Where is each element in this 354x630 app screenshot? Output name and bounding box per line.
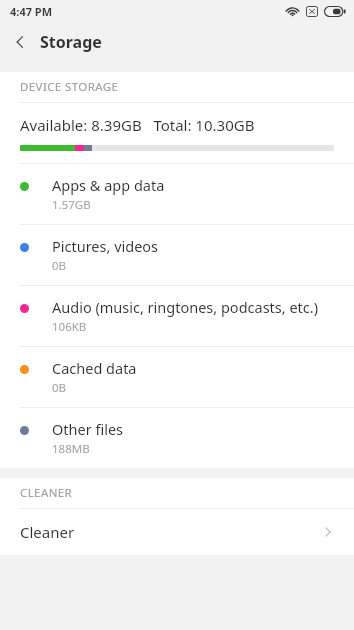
staticText: CLEANER	[20, 485, 73, 501]
button[interactable]: Other files	[0, 408, 354, 468]
button[interactable]: Audio (music, ringtones, podcasts, etc.)	[0, 286, 354, 346]
staticText: 0B	[52, 380, 67, 396]
staticText: 0B	[52, 258, 67, 274]
staticText: Cached data	[52, 358, 137, 378]
staticText: Pictures, videos	[52, 236, 159, 256]
staticText: Other files	[52, 419, 124, 439]
button[interactable]: Pictures, videos	[0, 225, 354, 285]
staticText: Storage	[40, 31, 102, 53]
staticText: Available: 8.39GB Total: 10.30GB	[20, 115, 255, 135]
button[interactable]: Cached data	[0, 347, 354, 407]
staticText: Apps & app data	[52, 175, 165, 195]
button[interactable]: Cleaner	[0, 509, 354, 555]
button[interactable]: Available: 8.39GB Total: 10.30GB	[0, 103, 354, 163]
button[interactable]: Back	[0, 22, 40, 62]
staticText: 1.57GB	[52, 197, 91, 213]
staticText: 188MB	[52, 441, 90, 457]
staticText: Audio (music, ringtones, podcasts, etc.)	[52, 297, 319, 317]
staticText: 106KB	[52, 319, 87, 335]
staticText: DEVICE STORAGE	[20, 79, 119, 95]
staticText: Cleaner	[20, 522, 322, 542]
staticText: 4:47 PM	[10, 4, 53, 19]
button[interactable]: Apps & app data	[0, 164, 354, 224]
